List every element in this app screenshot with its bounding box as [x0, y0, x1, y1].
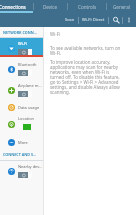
staticText: NETWORK CONN... [3, 30, 37, 35]
staticText: Device [43, 4, 58, 10]
staticText: To improve location accuracy, applicatio… [50, 59, 120, 95]
staticText: Wi-Fi Direct [82, 17, 105, 23]
button[interactable]: Scan [62, 13, 78, 27]
button[interactable]: Nearby dev... [0, 161, 43, 182]
button[interactable]: General [107, 0, 136, 13]
button[interactable]: Location [0, 113, 43, 135]
staticText: Controls [78, 4, 97, 10]
button[interactable]: Device [34, 0, 67, 13]
button[interactable]: Controls [68, 0, 106, 13]
button[interactable]: Data usage [0, 101, 43, 113]
staticText: Connections [0, 4, 26, 10]
staticText: General [113, 4, 130, 10]
button[interactable]: Bluetooth [0, 59, 43, 80]
button[interactable]: Wi-Fi Direct [79, 13, 108, 27]
staticText: Data usage [18, 105, 40, 110]
button[interactable]: Wi-Fi [0, 38, 43, 59]
button[interactable]: Airplane m... [0, 80, 43, 101]
staticText: Scan [65, 17, 75, 23]
staticText: Wi-Fi [18, 41, 28, 46]
staticText: CONNECT AND S... [3, 152, 37, 157]
button[interactable]: More netwo... [0, 135, 43, 149]
button[interactable]: Search [109, 13, 122, 27]
staticText: More netwo... [18, 140, 43, 145]
staticText: Bluetooth [18, 62, 37, 67]
staticText: To see available networks, turn on Wi-Fi… [50, 45, 126, 56]
button[interactable]: More options [123, 13, 135, 27]
staticText: Nearby dev... [18, 164, 43, 169]
staticText: Wi-Fi [50, 31, 61, 37]
staticText: Location [18, 116, 35, 121]
button[interactable]: Connections [0, 0, 33, 13]
staticText: Airplane m... [18, 83, 42, 88]
